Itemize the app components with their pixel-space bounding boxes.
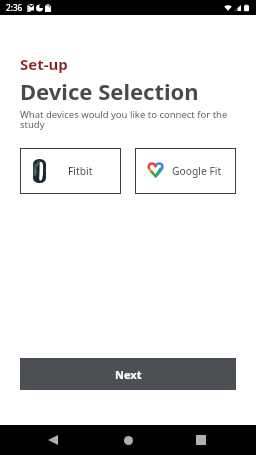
staticText: Set-up [20,54,68,74]
staticText: Fitbit [68,164,93,178]
button[interactable]: Google Fit [135,148,236,194]
button[interactable]: Next [20,358,236,390]
staticText: Device Selection [20,76,199,106]
staticText: What devices would you like to connect f… [20,108,228,131]
button[interactable]: Fitbit [20,148,121,194]
button[interactable]: Back [38,425,68,455]
button[interactable]: Recents [186,425,216,455]
staticText: Google Fit [172,164,222,178]
staticText: 2:36 [6,2,23,13]
button[interactable]: Home [113,425,143,455]
staticText: Next [115,367,142,382]
